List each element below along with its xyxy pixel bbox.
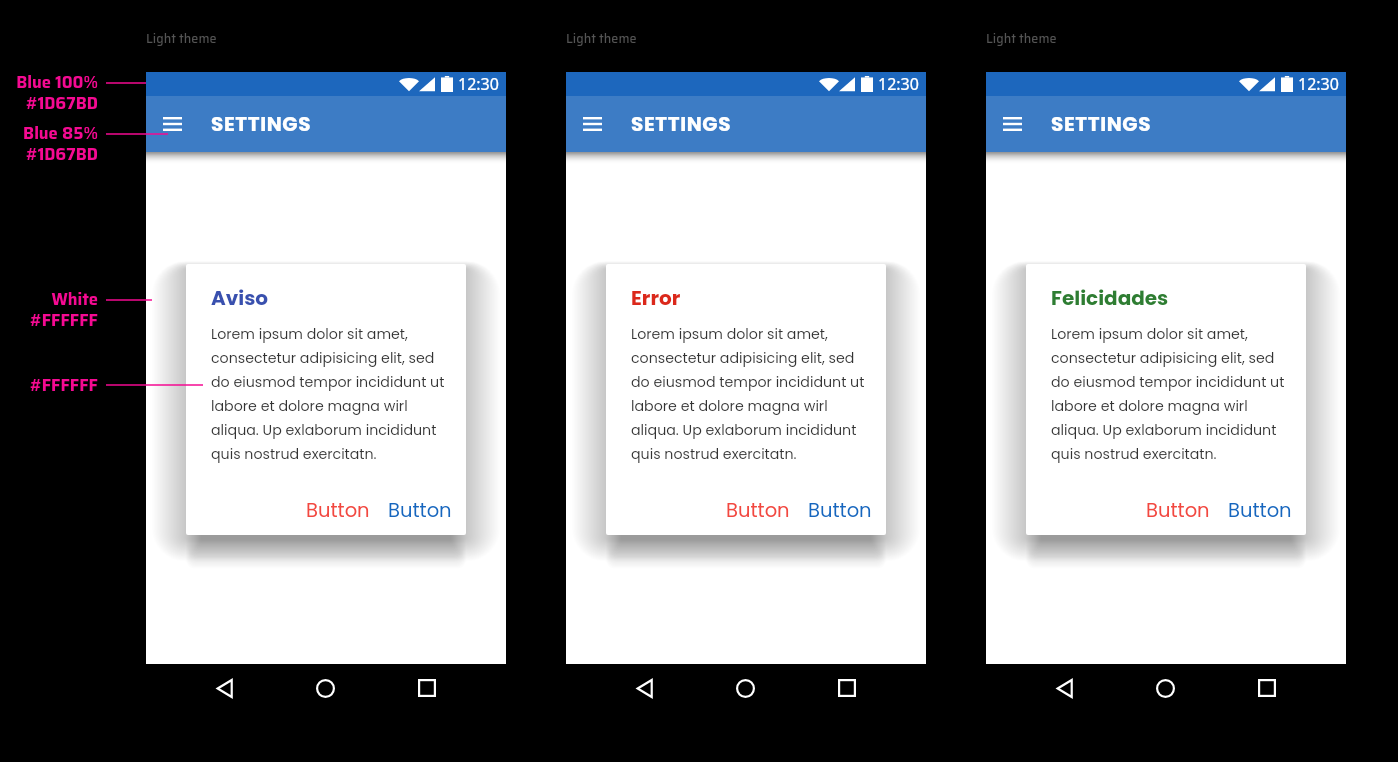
button[interactable]: Felicidades xyxy=(1026,264,1306,535)
button[interactable]: Open navigation menu xyxy=(152,104,192,144)
button[interactable]: Open navigation menu xyxy=(572,104,612,144)
button[interactable]: Button xyxy=(1222,493,1298,528)
button[interactable]: Back xyxy=(595,664,695,712)
staticText: White #FFFFFF xyxy=(0,286,98,333)
button[interactable]: Button xyxy=(300,493,376,528)
staticText: Blue 100% #1D67BD xyxy=(0,69,98,116)
staticText: Button xyxy=(306,497,370,524)
staticText: Felicidades xyxy=(1051,284,1169,312)
staticText: Blue 85% #1D67BD xyxy=(0,120,98,167)
staticText: SETTINGS xyxy=(211,110,312,138)
button[interactable]: Aviso xyxy=(186,264,466,535)
staticText: Lorem ipsum dolor sit amet, consectetur … xyxy=(211,324,445,464)
button[interactable]: Recent apps xyxy=(1216,664,1317,712)
button[interactable]: Button xyxy=(802,493,878,528)
button[interactable]: Back xyxy=(1015,664,1115,712)
staticText: Lorem ipsum dolor sit amet, consectetur … xyxy=(1051,324,1285,464)
staticText: Light theme xyxy=(146,29,217,49)
staticText: 12:30 xyxy=(1298,73,1339,95)
staticText: SETTINGS xyxy=(631,110,732,138)
staticText: #FFFFFF xyxy=(0,372,98,398)
button[interactable]: Home xyxy=(1115,664,1216,712)
staticText: Button xyxy=(808,497,872,524)
button[interactable]: Open navigation menu xyxy=(992,104,1032,144)
staticText: Button xyxy=(388,497,452,524)
button[interactable]: Home xyxy=(275,664,376,712)
staticText: Aviso xyxy=(211,284,269,312)
staticText: Lorem ipsum dolor sit amet, consectetur … xyxy=(631,324,865,464)
staticText: SETTINGS xyxy=(1051,110,1152,138)
button[interactable]: Recent apps xyxy=(796,664,897,712)
staticText: Error xyxy=(631,284,681,312)
button[interactable]: Recent apps xyxy=(376,664,477,712)
button[interactable]: Button xyxy=(382,493,458,528)
staticText: Button xyxy=(726,497,790,524)
button[interactable]: Error xyxy=(606,264,886,535)
staticText: Light theme xyxy=(986,29,1057,49)
button[interactable]: Back xyxy=(175,664,275,712)
staticText: Button xyxy=(1146,497,1210,524)
button[interactable]: Button xyxy=(1140,493,1216,528)
staticText: 12:30 xyxy=(878,73,919,95)
button[interactable]: Home xyxy=(695,664,796,712)
staticText: Light theme xyxy=(566,29,637,49)
staticText: 12:30 xyxy=(458,73,499,95)
button[interactable]: Button xyxy=(720,493,796,528)
staticText: Button xyxy=(1228,497,1292,524)
